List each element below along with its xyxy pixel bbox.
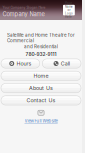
staticText: Contact Us (26, 97, 55, 104)
staticText: Company Name (2, 11, 44, 18)
staticText: Hours (16, 60, 31, 67)
button[interactable]: About Us (1, 83, 81, 93)
staticText: Logo Here (65, 12, 73, 19)
staticText: About Us (29, 85, 53, 91)
button[interactable]: Home (1, 71, 81, 80)
staticText: Satellite and Home Theatre for Commercia… (7, 32, 75, 43)
button[interactable]: View Full Website (0, 105, 82, 124)
staticText: Your Name (65, 2, 73, 8)
staticText: Call (61, 60, 70, 67)
staticText: and Residential (24, 44, 58, 49)
staticText: Your Company Slogan Here (2, 6, 45, 9)
staticText: 780-932-9111 (25, 51, 56, 57)
button[interactable]: Contact Us (1, 96, 81, 105)
button[interactable]: Call (42, 59, 81, 68)
staticText: or (67, 8, 70, 12)
button[interactable]: Hours (1, 59, 40, 68)
staticText: Home (33, 73, 48, 79)
staticText: View Full Website (24, 118, 57, 124)
